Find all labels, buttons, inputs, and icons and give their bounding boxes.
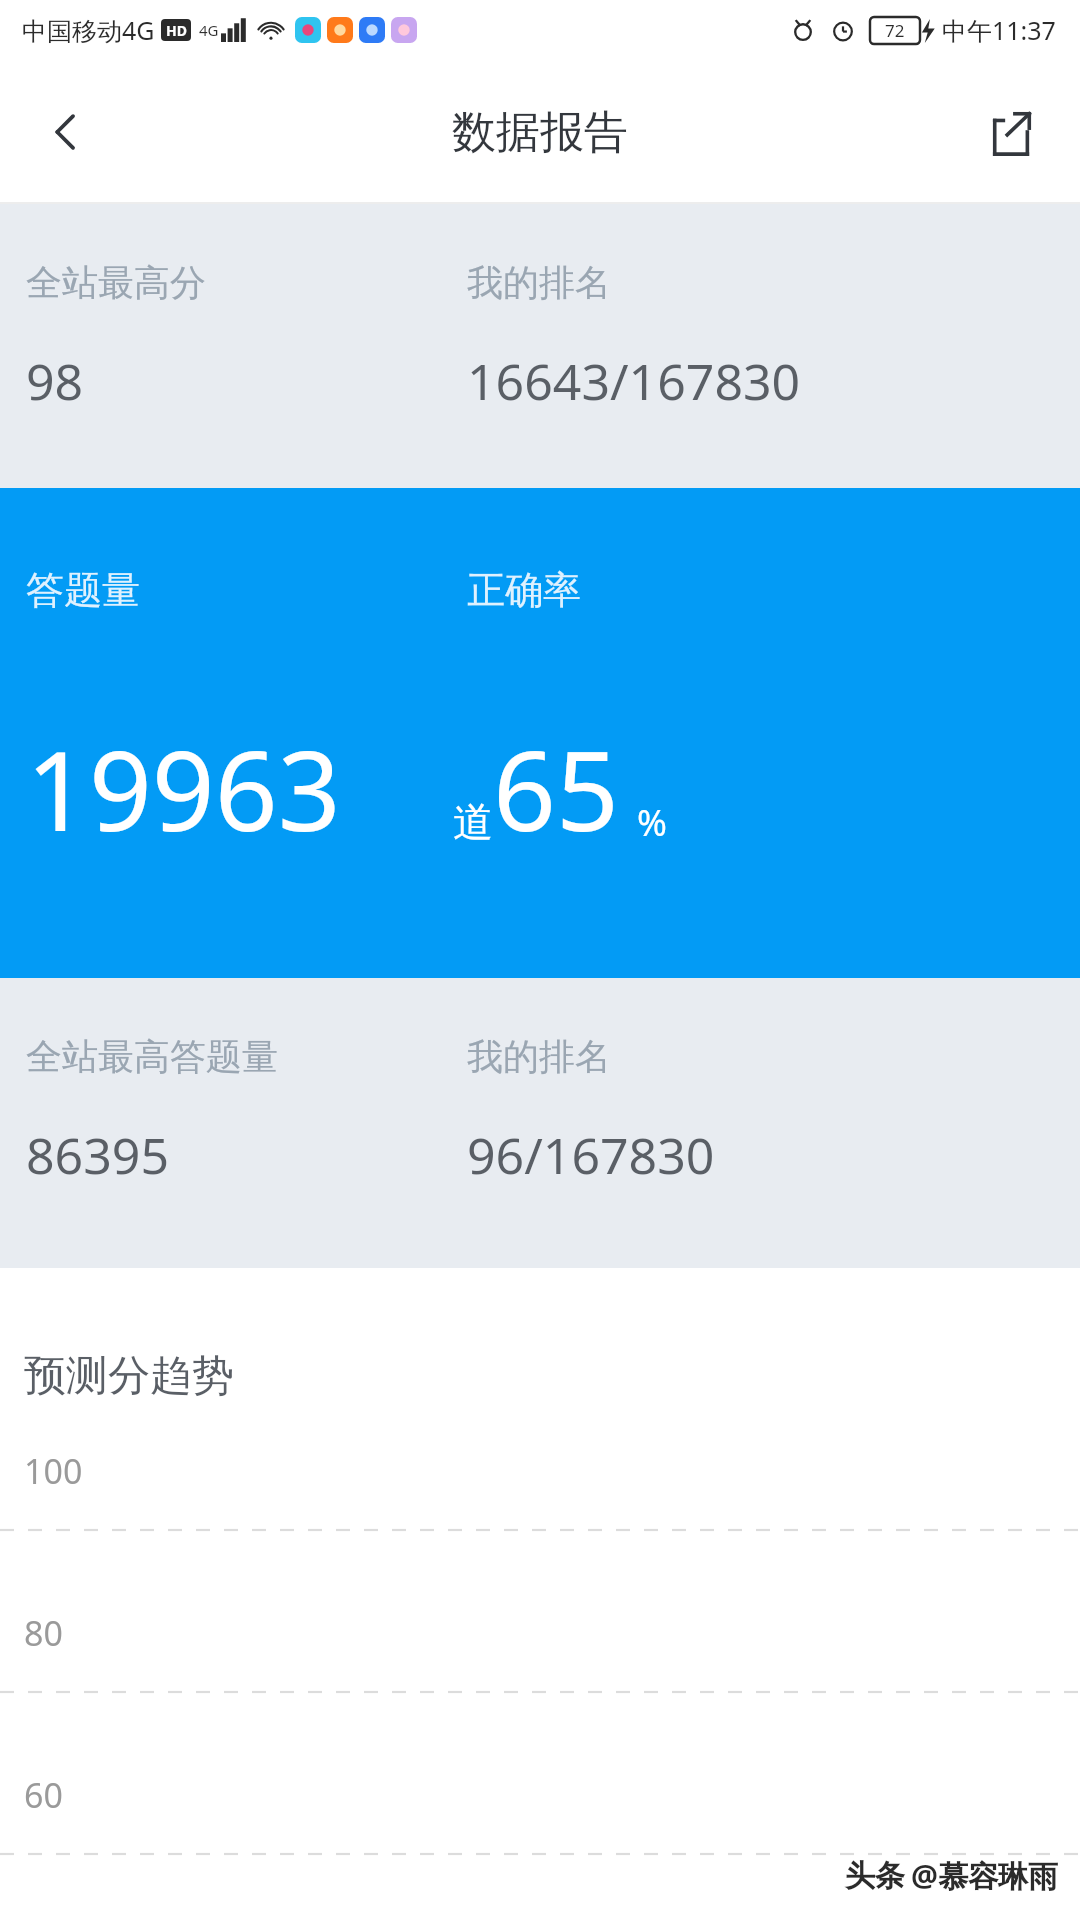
staticText: 100 bbox=[24, 1448, 83, 1494]
staticText: 19963 bbox=[26, 713, 341, 863]
button[interactable]: Share bbox=[964, 84, 1060, 180]
staticText: 80 bbox=[24, 1610, 63, 1656]
staticText: 道 bbox=[453, 797, 493, 847]
staticText: @慕容琳雨 bbox=[911, 1855, 1058, 1896]
staticText: 我的排名 bbox=[467, 1034, 611, 1079]
staticText: 正确率 bbox=[467, 566, 581, 614]
staticText: 答题量 bbox=[26, 566, 140, 614]
staticText: 96/167830 bbox=[467, 1121, 715, 1189]
staticText: 60 bbox=[24, 1772, 63, 1818]
staticText: 98 bbox=[26, 347, 84, 415]
staticText: 4G bbox=[199, 20, 219, 40]
staticText: 72 bbox=[885, 19, 905, 42]
staticText: 我的排名 bbox=[467, 260, 611, 305]
staticText: HD bbox=[166, 21, 187, 40]
staticText: 数据报告 bbox=[452, 105, 628, 160]
staticText: 65 bbox=[493, 713, 619, 863]
staticText: 预测分趋势 bbox=[24, 1350, 234, 1403]
staticText: 中国移动4G bbox=[22, 13, 155, 47]
staticText: 全站最高分 bbox=[26, 260, 206, 305]
button[interactable]: Back bbox=[18, 84, 114, 180]
staticText: % bbox=[637, 798, 667, 847]
staticText: 头条 bbox=[845, 1857, 905, 1895]
staticText: 16643/167830 bbox=[467, 347, 801, 415]
staticText: 全站最高答题量 bbox=[26, 1034, 278, 1079]
staticText: 86395 bbox=[26, 1121, 169, 1189]
staticText: 中午11:37 bbox=[942, 13, 1056, 47]
